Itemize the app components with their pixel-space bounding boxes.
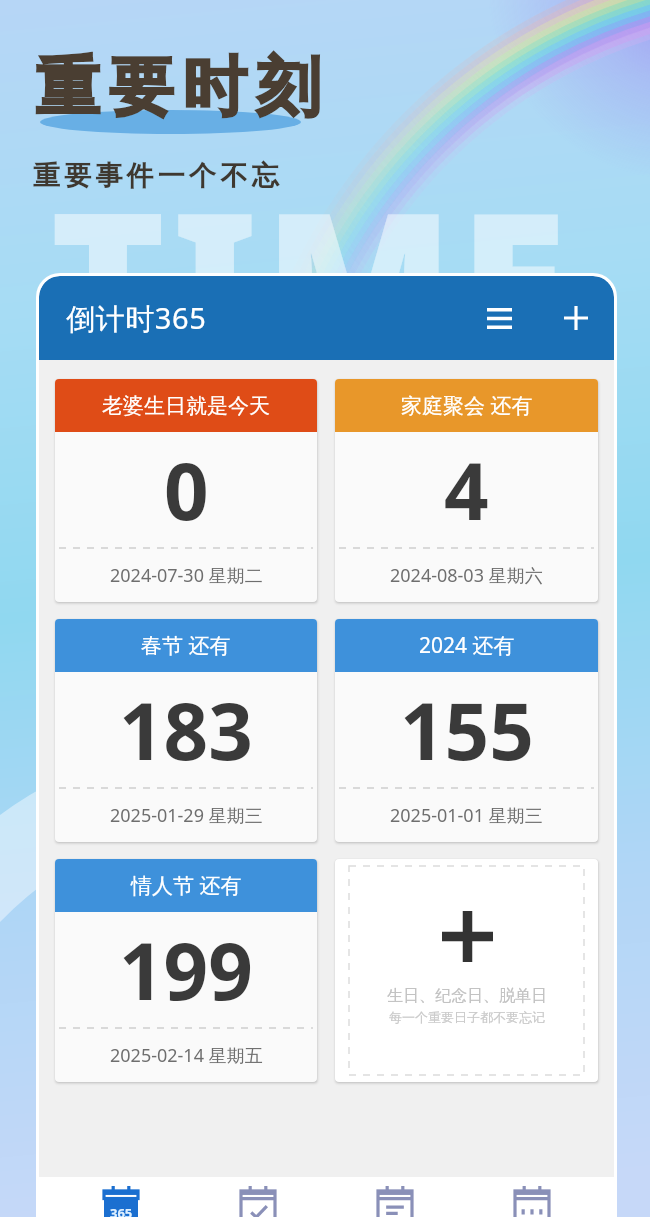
- button[interactable]: 家庭聚会 还有: [335, 379, 598, 602]
- button[interactable]: Checklist: [203, 1177, 313, 1217]
- staticText: 2025-01-01 星期三: [390, 803, 543, 828]
- button[interactable]: 2024 还有: [335, 619, 598, 842]
- staticText: 倒计时365: [66, 298, 207, 338]
- button[interactable]: Notes: [340, 1177, 450, 1217]
- button[interactable]: Calendar: [477, 1177, 587, 1217]
- staticText: 2024 还有: [419, 631, 515, 660]
- button[interactable]: 老婆生日就是今天: [55, 379, 317, 602]
- staticText: 家庭聚会 还有: [401, 391, 533, 420]
- staticText: 155: [400, 677, 534, 783]
- staticText: 183: [119, 677, 253, 783]
- button[interactable]: 情人节 还有: [55, 859, 317, 1082]
- staticText: 老婆生日就是今天: [102, 393, 270, 419]
- staticText: 2024-08-03 星期六: [390, 563, 543, 588]
- staticText: 重要时刻: [31, 47, 325, 128]
- staticText: TIME: [50, 144, 574, 411]
- staticText: 2025-02-14 星期五: [110, 1043, 263, 1068]
- staticText: 情人节 还有: [131, 871, 242, 900]
- button[interactable]: Countdown: [66, 1177, 176, 1217]
- staticText: 2025-01-29 星期三: [110, 803, 263, 828]
- button[interactable]: Add countdown: [335, 859, 598, 1082]
- button[interactable]: Add: [550, 292, 602, 344]
- staticText: 春节 还有: [141, 631, 231, 660]
- staticText: 2024-07-30 星期二: [110, 563, 263, 588]
- staticText: 199: [119, 917, 253, 1023]
- staticText: 生日、纪念日、脱单日: [387, 986, 547, 1006]
- staticText: 重要事件一个不忘: [33, 159, 283, 193]
- staticText: 0: [164, 437, 209, 543]
- button[interactable]: 春节 还有: [55, 619, 317, 842]
- staticText: 每一个重要日子都不要忘记: [389, 1009, 545, 1025]
- button[interactable]: Menu: [473, 292, 525, 344]
- staticText: 4: [444, 437, 489, 543]
- staticText: 365: [110, 1204, 133, 1217]
